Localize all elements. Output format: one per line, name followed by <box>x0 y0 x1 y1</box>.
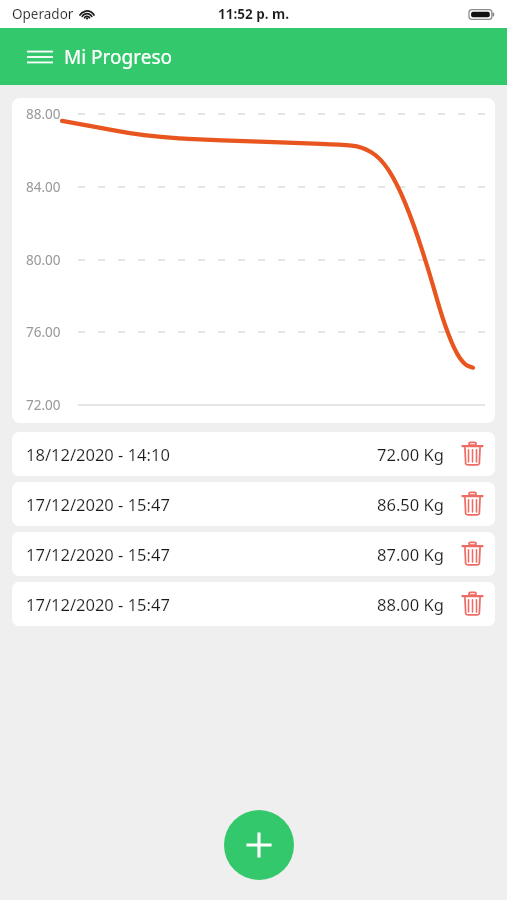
button[interactable]: 18/12/2020 - 14:10 <box>12 432 495 476</box>
button[interactable]: Delete entry <box>458 540 486 568</box>
button[interactable]: Delete entry <box>458 440 486 468</box>
button[interactable]: 17/12/2020 - 15:47 <box>12 582 495 626</box>
staticText: 76.00 <box>26 323 61 341</box>
staticText: 72.00 <box>26 396 61 414</box>
staticText: 17/12/2020 - 15:47 <box>26 593 170 615</box>
staticText: 86.50 Kg <box>377 493 444 515</box>
staticText: 80.00 <box>26 251 61 269</box>
staticText: Operador <box>12 5 74 23</box>
staticText: 11:52 p. m. <box>218 5 289 23</box>
staticText: 88.00 <box>26 105 61 123</box>
staticText: 72.00 Kg <box>377 443 444 465</box>
staticText: 17/12/2020 - 15:47 <box>26 493 170 515</box>
button[interactable]: Delete entry <box>458 590 486 618</box>
button[interactable]: Add weight entry <box>224 810 294 880</box>
staticText: 18/12/2020 - 14:10 <box>26 443 170 465</box>
staticText: 87.00 Kg <box>377 543 444 565</box>
staticText: 88.00 Kg <box>377 593 444 615</box>
button[interactable]: Open navigation menu <box>25 42 55 72</box>
button[interactable]: 17/12/2020 - 15:47 <box>12 532 495 576</box>
staticText: Mi Progreso <box>64 44 172 70</box>
staticText: 17/12/2020 - 15:47 <box>26 543 170 565</box>
button[interactable]: Delete entry <box>458 490 486 518</box>
button[interactable]: 17/12/2020 - 15:47 <box>12 482 495 526</box>
staticText: 84.00 <box>26 178 61 196</box>
